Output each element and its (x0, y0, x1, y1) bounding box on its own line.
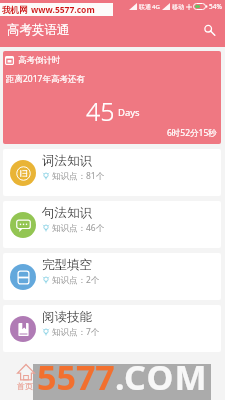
button[interactable]: 句法知识 (3, 201, 221, 248)
staticText: .COM (115, 354, 208, 400)
staticText: 距离2017年高考还有 (6, 73, 85, 85)
staticText: 句法知识 (42, 205, 92, 221)
staticText: 4G (152, 3, 160, 11)
staticText: 首页 (17, 381, 33, 391)
staticText: 联通 (139, 3, 151, 11)
button[interactable]: Search (196, 17, 222, 43)
staticText: 知识点：46个 (52, 222, 105, 234)
staticText: 词法知识 (42, 153, 92, 169)
staticText: 移动 (172, 3, 184, 11)
button[interactable]: 完型填空 (3, 253, 221, 300)
staticText: 高考英语通 (7, 22, 70, 38)
staticText: 45 (86, 94, 115, 128)
staticText: Days (118, 106, 140, 119)
staticText: 54% (209, 2, 222, 11)
staticText: www.5577.com (31, 4, 95, 16)
staticText: 知识点：81个 (52, 170, 105, 182)
button[interactable]: 高考倒计时 (3, 51, 221, 144)
staticText: 知识点：2个 (52, 274, 100, 286)
staticText: 完型填空 (42, 257, 92, 273)
button[interactable]: 词法知识 (3, 149, 221, 196)
staticText: 高考倒计时 (18, 55, 61, 66)
staticText: 6时52分15秒 (167, 127, 217, 139)
staticText: 知识点：7个 (52, 326, 100, 338)
staticText: 阅读技能 (42, 309, 92, 325)
button[interactable]: 阅读技能 (3, 305, 221, 352)
staticText: 我机网 (2, 5, 28, 16)
staticText: 5577 (37, 354, 115, 400)
